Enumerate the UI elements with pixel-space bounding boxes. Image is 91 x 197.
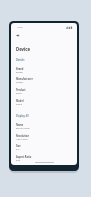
staticText: Display #0: [16, 114, 29, 117]
staticText: Resolution: [16, 134, 30, 137]
staticText: Model: [16, 99, 24, 102]
staticText: 20:9: [16, 159, 21, 162]
staticText: Device: [16, 46, 31, 52]
button[interactable]: Aspect Ratio: [11, 154, 77, 164]
staticText: oriole: [16, 92, 22, 95]
button[interactable]: Name: [11, 122, 77, 133]
button[interactable]: Size: [11, 143, 77, 154]
staticText: Brand: [16, 67, 24, 70]
button[interactable]: Product: [11, 87, 77, 98]
staticText: Manufacturer: [16, 77, 33, 80]
button[interactable]: Back: [17, 32, 19, 39]
staticText: Aspect Ratio: [16, 155, 32, 158]
staticText: Product: [16, 88, 26, 91]
staticText: Pixel 6: [16, 103, 23, 106]
button[interactable]: Brand: [11, 66, 77, 76]
button[interactable]: Model: [11, 98, 77, 108]
button[interactable]: Manufacturer: [11, 76, 77, 87]
button[interactable]: Resolution: [11, 133, 77, 143]
staticText: 6.4": [16, 148, 20, 151]
staticText: google: [16, 71, 23, 74]
staticText: Size: [16, 144, 21, 147]
staticText: Built-in Screen: [16, 127, 30, 130]
staticText: Google: [16, 81, 23, 84]
staticText: Name: [16, 123, 24, 126]
staticText: 1080 x 2400: [16, 138, 28, 141]
staticText: 10:08: [17, 26, 23, 29]
staticText: Details: [16, 58, 25, 61]
